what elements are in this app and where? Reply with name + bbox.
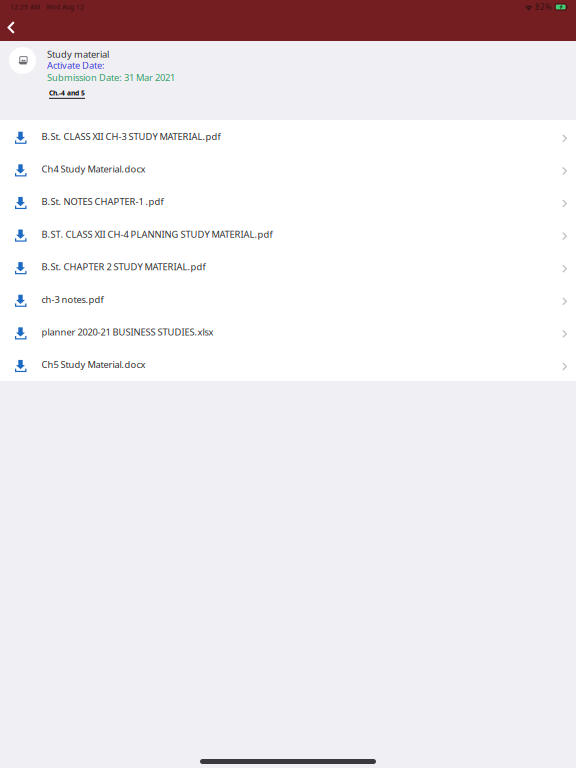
button[interactable]: B.St. CHAPTER 2 STUDY MATERIAL.pdf xyxy=(0,250,576,283)
staticText: Ch4 Study Material.docx xyxy=(41,163,145,175)
staticText: B.St. CLASS XII CH-3 STUDY MATERIAL.pdf xyxy=(41,130,220,142)
staticText: Submission Date: 31 Mar 2021 xyxy=(47,71,175,84)
staticText: Activate Date: xyxy=(47,59,105,71)
button[interactable]: Ch4 Study Material.docx xyxy=(0,153,576,185)
staticText: Wed Aug 12 xyxy=(46,3,84,11)
staticText: 82% xyxy=(535,2,552,12)
staticText: Study material xyxy=(47,48,109,60)
staticText: 12:29 AM xyxy=(10,3,40,11)
staticText: B.St. CHAPTER 2 STUDY MATERIAL.pdf xyxy=(41,260,205,273)
button[interactable]: B.St. CLASS XII CH-3 STUDY MATERIAL.pdf xyxy=(0,120,576,153)
staticText: Ch5 Study Material.docx xyxy=(41,358,145,371)
button[interactable]: B.St. NOTES CHAPTER-1 .pdf xyxy=(0,185,576,218)
button[interactable]: Ch5 Study Material.docx xyxy=(0,348,576,381)
button[interactable]: ch-3 notes.pdf xyxy=(0,283,576,316)
staticText: B.ST. CLASS XII CH-4 PLANNING STUDY MATE… xyxy=(41,228,272,240)
staticText: Ch.-4 and 5 xyxy=(49,88,85,97)
staticText: B.St. NOTES CHAPTER-1 .pdf xyxy=(41,195,163,208)
button[interactable]: B.ST. CLASS XII CH-4 PLANNING STUDY MATE… xyxy=(0,218,576,250)
staticText: planner 2020-21 BUSINESS STUDIES.xlsx xyxy=(41,326,213,338)
button[interactable]: planner 2020-21 BUSINESS STUDIES.xlsx xyxy=(0,316,576,348)
staticText: ch-3 notes.pdf xyxy=(41,293,103,305)
button[interactable]: Back xyxy=(0,14,32,41)
